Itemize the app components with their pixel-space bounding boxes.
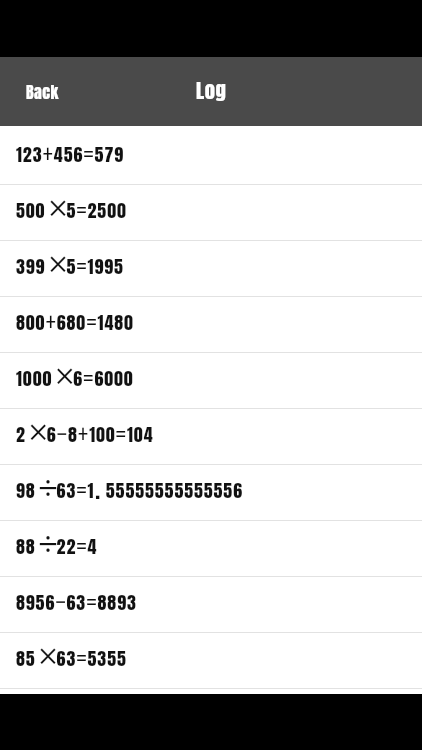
button[interactable]: 800+680=1480 [0,297,422,353]
button[interactable]: 85×63=5355 [0,633,422,689]
staticText: 399×5=1995 [16,252,124,280]
button[interactable]: 123+456=579 [0,129,422,185]
staticText: 85×63=5355 [16,644,127,672]
button[interactable]: 98÷63=1.55555555555556 [0,465,422,521]
button[interactable]: Back [26,80,59,104]
button[interactable]: 88÷22=4 [0,521,422,577]
staticText: 88÷22=4 [16,532,98,560]
staticText: 98÷63=1.55555555555556 [16,476,243,504]
button[interactable]: 2×6−8+100=104 [0,409,422,465]
staticText: 1000×6=6000 [16,364,134,392]
button[interactable]: 1000×6=6000 [0,353,422,409]
staticText: 123+456=579 [16,141,125,168]
button[interactable]: 500×5=2500 [0,185,422,241]
staticText: 2×6−8+100=104 [16,420,154,448]
staticText: 800+680=1480 [16,309,134,336]
button[interactable]: 399×5=1995 [0,241,422,297]
staticText: 8956−63=8893 [16,589,137,616]
staticText: 500×5=2500 [16,196,127,224]
staticText: Log [196,75,227,106]
staticText: Back [26,80,59,104]
button[interactable]: 8956−63=8893 [0,577,422,633]
